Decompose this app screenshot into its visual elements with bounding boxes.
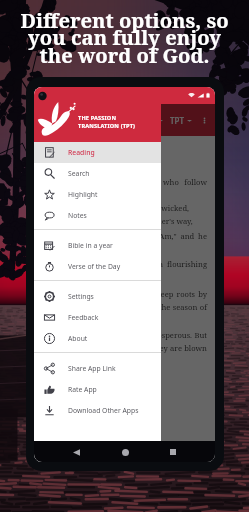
staticText: Feedback — [68, 313, 99, 322]
button[interactable]: More options — [199, 115, 210, 126]
staticText: THE PASSION TRANSLATION (TPT) — [78, 114, 136, 130]
staticText: Share App Link — [68, 364, 116, 373]
button[interactable]: Notes — [34, 205, 161, 226]
staticText: About — [68, 334, 88, 343]
button[interactable]: Highlight — [34, 184, 161, 205]
staticText: Settings — [68, 292, 94, 301]
staticText: Poetic Introduction — [42, 150, 147, 164]
button[interactable]: Feedback — [34, 307, 161, 328]
button[interactable]: Search — [34, 163, 161, 184]
staticText: Search — [68, 169, 90, 178]
staticText: What delight comes to those who follow G… — [42, 177, 207, 200]
button[interactable]: Home — [118, 445, 132, 459]
button[interactable]: Download Other Apps — [34, 400, 161, 421]
button[interactable]: About — [34, 328, 161, 349]
staticText: Highlight — [68, 190, 98, 199]
staticText: planted by God's design, with deep roots… — [42, 289, 207, 325]
button[interactable]: Bible in a year — [34, 235, 161, 256]
staticText: Rate App — [68, 385, 97, 394]
button[interactable]: Share App Link — [34, 358, 161, 379]
staticText: Different options, so you can fully enjo… — [20, 6, 229, 69]
button[interactable]: Verse of the Day — [34, 256, 161, 277]
button[interactable]: Settings — [34, 286, 161, 307]
staticText: Download Other Apps — [68, 406, 139, 415]
staticText: Reading — [68, 148, 95, 157]
staticText: TPT — [170, 115, 184, 126]
staticText: He will be standing firm like a flourish… — [42, 259, 207, 282]
staticText: Verse of the Day — [68, 262, 121, 271]
staticText: nor will they dawdle in the scorner's wa… — [42, 216, 207, 226]
staticText: Notes — [68, 211, 87, 220]
staticText: Bible in a year — [68, 241, 113, 250]
staticText: Psalm — [131, 115, 155, 126]
button[interactable]: Back — [69, 445, 83, 459]
button[interactable]: Reading — [34, 142, 161, 163]
button[interactable]: Recent apps — [166, 445, 180, 459]
staticText: They won't walk in step with the wicked, — [42, 203, 207, 213]
button[interactable]: Rate App — [34, 379, 161, 400]
staticText: His passion is the Word of "I Am," and h… — [42, 231, 207, 254]
staticText: leaves never dry or fainting, prosperous… — [42, 330, 207, 366]
